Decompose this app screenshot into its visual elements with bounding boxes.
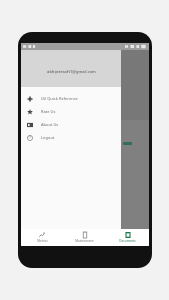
button[interactable]: Documents <box>106 229 149 246</box>
button[interactable]: Metrics <box>21 229 63 246</box>
staticText: Oil Quick Reference <box>41 96 78 101</box>
staticText: About Us <box>41 122 59 127</box>
button[interactable]: Rate Us <box>21 105 121 118</box>
staticText: abhijeetsoft1@gmail.com <box>47 69 96 74</box>
staticText: Logout <box>41 135 55 140</box>
staticText: Rate Us <box>41 109 56 114</box>
other: Maintenance <box>82 232 88 238</box>
staticText: Documents <box>119 239 136 243</box>
other: Documents <box>125 232 131 238</box>
staticText: Maintenance <box>75 239 94 243</box>
button[interactable]: Oil Quick Reference <box>21 92 121 105</box>
button[interactable]: abhijeetsoft1@gmail.com <box>21 50 121 87</box>
button[interactable]: Maintenance <box>63 229 106 246</box>
button[interactable]: Logout <box>21 131 121 144</box>
staticText: Metrics <box>37 239 48 243</box>
button[interactable] <box>121 50 149 229</box>
button[interactable]: About Us <box>21 118 121 131</box>
other: Metrics <box>39 232 45 238</box>
